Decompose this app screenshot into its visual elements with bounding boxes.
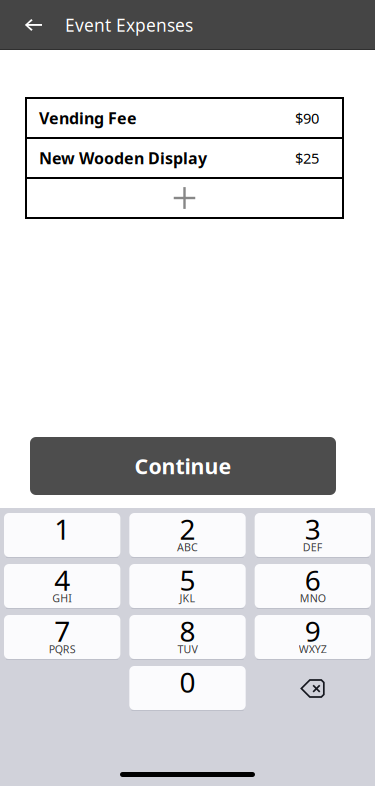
button[interactable]: 0 [129,666,246,711]
button[interactable]: 1 [4,513,120,558]
button[interactable]: Add expense [27,179,342,217]
button[interactable]: Back [0,0,56,50]
staticText: 5 [179,561,195,599]
button[interactable]: New Wooden Display [27,139,342,177]
staticText: 0 [179,663,195,701]
staticText: 6 [305,561,321,599]
staticText: Event Expenses [65,13,193,36]
staticText: PQRS [49,642,76,656]
button[interactable]: 2 [129,513,246,558]
staticText: Vending Fee [39,107,137,129]
staticText: $90 [295,108,319,128]
staticText: WXYZ [299,642,327,656]
staticText: 9 [305,612,321,650]
button[interactable]: 9 [255,615,371,660]
staticText: 8 [179,612,195,650]
button[interactable]: Delete [255,666,371,711]
staticText: MNO [300,591,326,605]
staticText: TUV [177,642,197,656]
staticText: New Wooden Display [39,147,207,169]
button[interactable]: 6 [255,564,371,609]
button[interactable]: 3 [255,513,371,558]
staticText: GHI [52,591,72,605]
staticText: 4 [54,561,70,599]
staticText: 2 [179,510,195,548]
staticText: $25 [295,148,319,168]
button[interactable]: 7 [4,615,120,660]
staticText: 1 [54,510,70,548]
button[interactable]: 5 [129,564,246,609]
staticText: Continue [134,452,231,480]
button[interactable]: Vending Fee [27,99,342,137]
button[interactable]: 8 [129,615,246,660]
staticText: JKL [179,591,195,605]
button[interactable]: 4 [4,564,120,609]
staticText: 3 [305,510,321,548]
staticText: 7 [54,612,70,650]
button[interactable]: Continue [30,437,336,495]
staticText: ABC [177,540,198,554]
staticText: DEF [303,540,323,554]
